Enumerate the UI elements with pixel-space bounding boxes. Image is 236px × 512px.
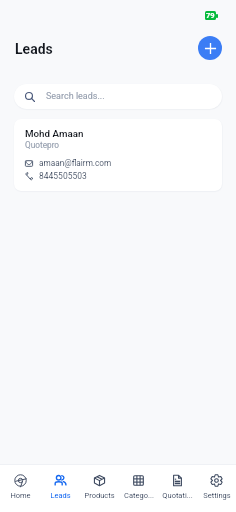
staticText: Products bbox=[84, 491, 115, 500]
staticText: Settings bbox=[203, 491, 231, 500]
button[interactable]: Add lead bbox=[198, 36, 222, 60]
button[interactable]: Home bbox=[0, 465, 40, 512]
staticText: Quotepro bbox=[25, 140, 60, 150]
button[interactable]: Products bbox=[80, 465, 119, 512]
button[interactable]: Quotati... bbox=[158, 465, 197, 512]
button[interactable]: Mohd Amaan bbox=[14, 119, 222, 191]
staticText: Home bbox=[10, 491, 31, 500]
staticText: 8445505503 bbox=[39, 171, 87, 181]
button[interactable]: Catego... bbox=[119, 465, 158, 512]
staticText: 79 bbox=[206, 11, 215, 20]
staticText: Search leads... bbox=[46, 91, 105, 102]
staticText: Catego... bbox=[124, 491, 154, 500]
staticText: Quotati... bbox=[162, 491, 193, 500]
staticText: Leads bbox=[50, 491, 71, 500]
button[interactable]: Settings bbox=[197, 465, 236, 512]
button[interactable]: Search leads... bbox=[14, 84, 222, 109]
staticText: Leads bbox=[15, 41, 53, 57]
button[interactable]: Leads bbox=[40, 465, 80, 512]
staticText: Mohd Amaan bbox=[25, 128, 84, 139]
staticText: amaan@flairm.com bbox=[39, 158, 112, 168]
